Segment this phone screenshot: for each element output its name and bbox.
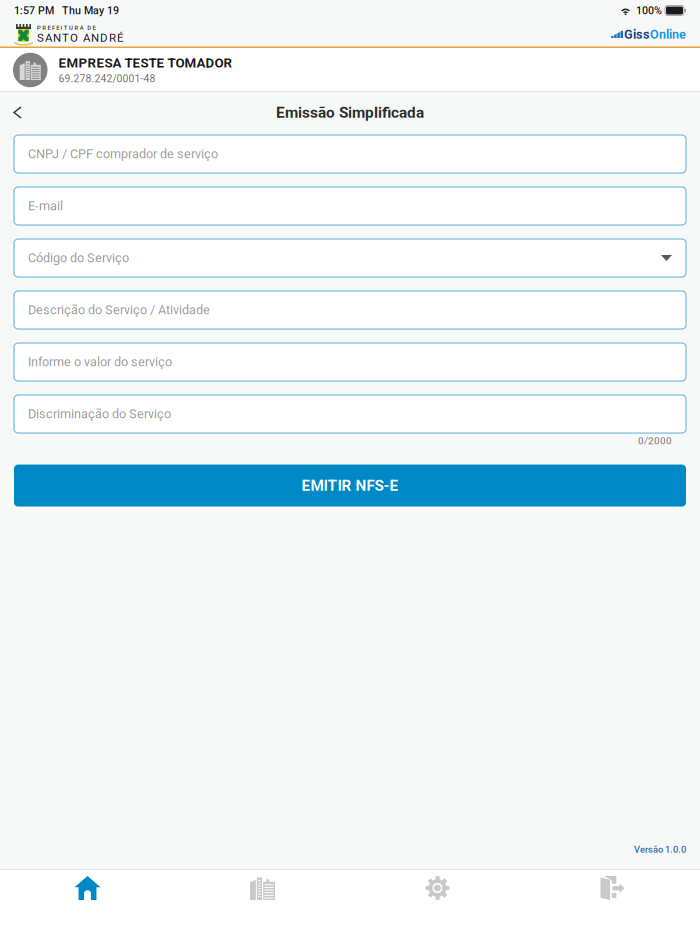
staticText: Versão 1.0.0 xyxy=(634,844,686,855)
staticText: CNPJ / CPF comprador de serviço xyxy=(28,147,218,161)
button[interactable]: Código do Serviço xyxy=(14,239,686,277)
staticText: Emissão Simplificada xyxy=(276,103,424,121)
staticText: Thu May 19 xyxy=(62,4,119,17)
staticText: Online xyxy=(650,27,686,42)
staticText: Código do Serviço xyxy=(28,251,129,265)
staticText: 69.278.242/0001-48 xyxy=(58,73,155,85)
staticText: E-mail xyxy=(28,199,63,213)
staticText: 100% xyxy=(636,4,662,17)
button[interactable]: Voltar xyxy=(4,95,31,129)
staticText: Descrição do Serviço / Atividade xyxy=(28,303,210,317)
staticText: Giss xyxy=(624,27,650,42)
staticText: Informe o valor do serviço xyxy=(28,355,172,369)
staticText: SANTO ANDRÉ xyxy=(37,31,124,45)
staticText: EMITIR NFS-E xyxy=(301,477,398,495)
button[interactable]: Configurações xyxy=(350,869,525,934)
staticText: 1:57 PM xyxy=(14,4,54,17)
staticText: Discriminação do Serviço xyxy=(28,407,171,421)
button[interactable]: Empresas xyxy=(175,869,350,934)
staticText: PREFEITURA DE xyxy=(37,24,96,31)
button[interactable]: Informe o valor do serviço xyxy=(14,343,686,381)
button[interactable]: Discriminação do Serviço xyxy=(14,395,686,433)
button[interactable]: EMITIR NFS-E xyxy=(14,465,686,507)
button[interactable]: Início xyxy=(0,869,175,934)
button[interactable]: Sair xyxy=(525,869,700,934)
button[interactable]: E-mail xyxy=(14,187,686,225)
staticText: EMPRESA TESTE TOMADOR xyxy=(58,55,232,71)
button[interactable]: CNPJ / CPF comprador de serviço xyxy=(14,135,686,173)
button[interactable]: Descrição do Serviço / Atividade xyxy=(14,291,686,329)
staticText: 0/2000 xyxy=(638,435,672,447)
